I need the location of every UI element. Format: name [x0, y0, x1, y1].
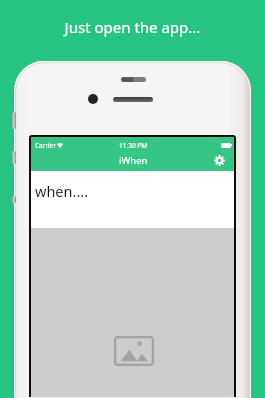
staticText: 11:30 PM [119, 141, 148, 150]
staticText: iWhen [119, 154, 148, 167]
staticText: Just open the app... [0, 17, 265, 37]
button[interactable]: Settings [212, 153, 227, 168]
staticText: when.... [35, 181, 89, 201]
staticText: Carrier [35, 141, 57, 150]
